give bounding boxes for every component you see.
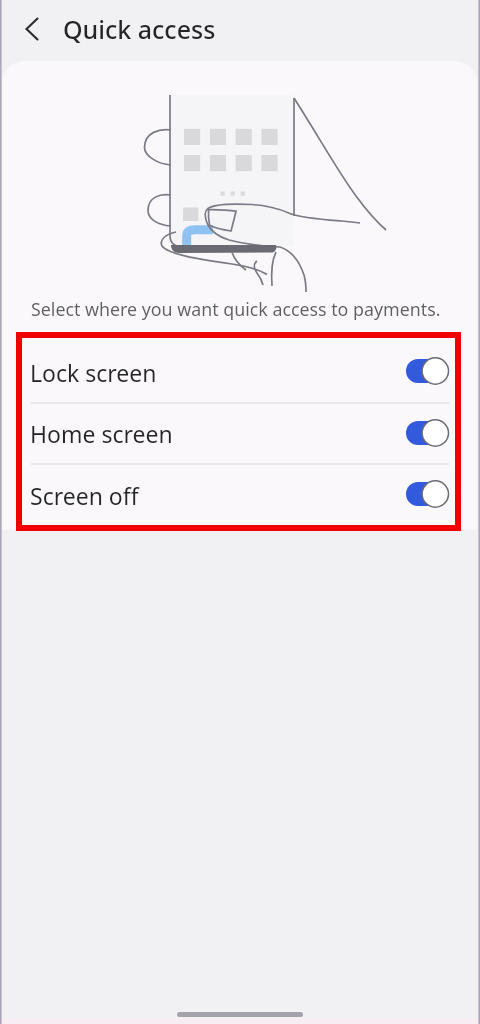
- staticText: Select where you want quick access to pa…: [31, 297, 441, 321]
- staticText: Screen off: [30, 480, 139, 511]
- staticText: Quick access: [63, 12, 216, 46]
- button[interactable]: Home screen: [0, 402, 480, 464]
- button[interactable]: Lock screen: [0, 340, 480, 402]
- staticText: Lock screen: [30, 357, 157, 388]
- button[interactable]: Back: [0, 3, 56, 59]
- button[interactable]: Screen off: [0, 463, 480, 525]
- staticText: Home screen: [30, 418, 173, 449]
